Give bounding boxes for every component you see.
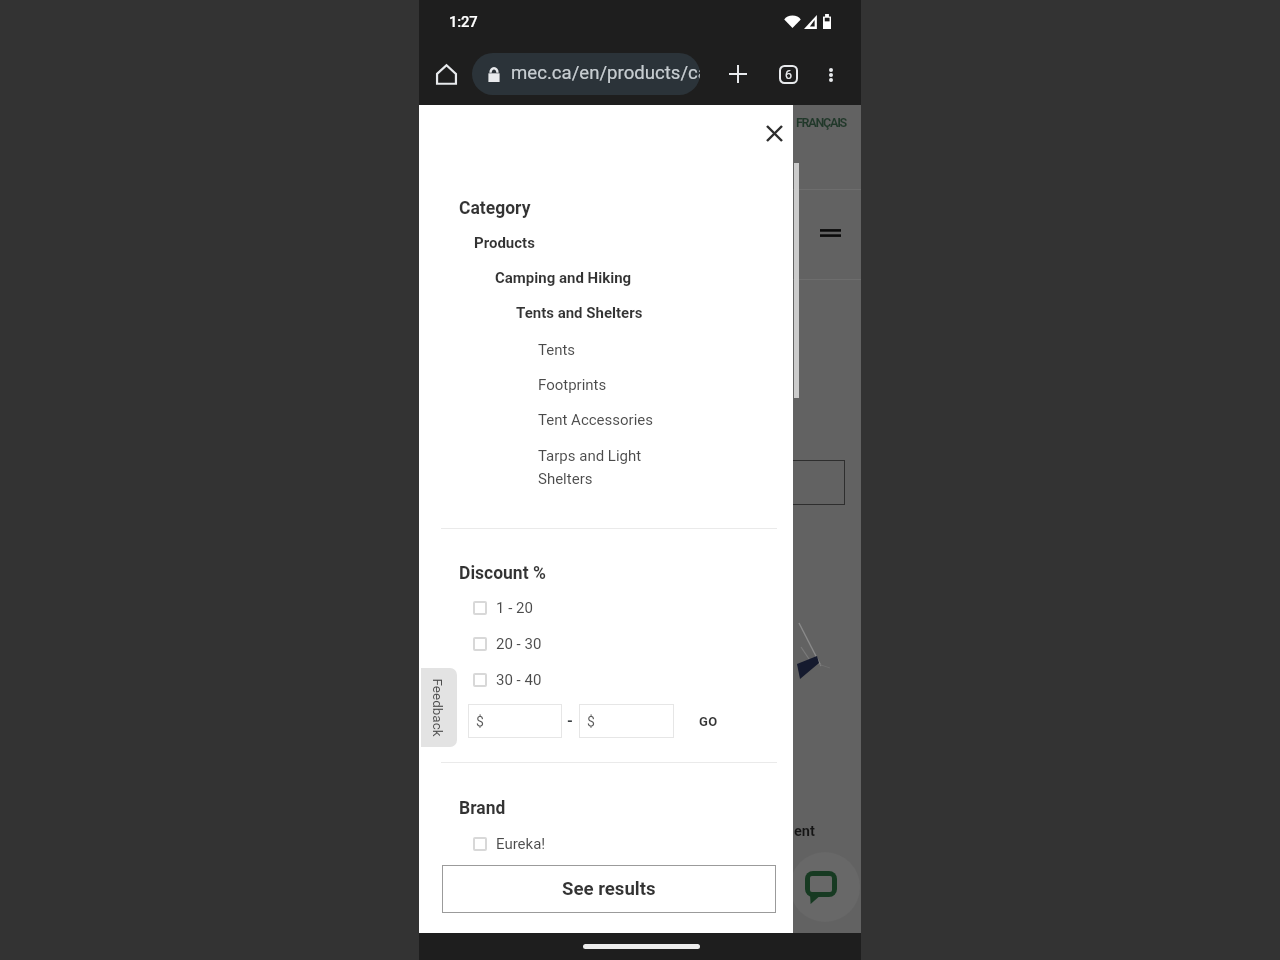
staticText: $ (476, 713, 484, 729)
button[interactable]: New tab (715, 54, 757, 96)
staticText: 1 - 20 (496, 599, 533, 617)
staticText: Tents and Shelters (516, 304, 643, 322)
button[interactable]: Tents (538, 337, 661, 367)
staticText: Category (459, 198, 531, 219)
button[interactable]: 20 - 30 (473, 632, 542, 656)
staticText: mec.ca/en/products/car (511, 62, 700, 84)
staticText: 30 - 40 (496, 671, 542, 689)
button[interactable]: Eureka! (473, 832, 546, 856)
staticText: 1:27 (449, 13, 478, 30)
staticText: 6 (785, 67, 793, 82)
staticText: Camping and Hiking (495, 269, 632, 287)
staticText: Feedback (429, 678, 445, 737)
staticText: Discount % (459, 563, 546, 584)
staticText: Tent Accessories (538, 411, 653, 429)
button[interactable]: 30 - 40 (473, 668, 542, 692)
button[interactable]: mec.ca/en/products/car (472, 53, 700, 95)
button[interactable]: More options (809, 54, 851, 96)
staticText: Brand (459, 798, 506, 819)
button[interactable]: Tents and Shelters (516, 298, 643, 328)
button[interactable]: Tabs (767, 54, 809, 96)
button[interactable]: Products (474, 228, 535, 258)
button[interactable]: Tent Accessories (538, 407, 661, 437)
button[interactable]: Tarps and Light Shelters (538, 443, 661, 535)
staticText: Eureka! (496, 835, 546, 853)
staticText: ent (794, 823, 815, 840)
button[interactable]: GO (691, 704, 737, 738)
button[interactable] (421, 668, 457, 747)
button[interactable]: See results (442, 865, 776, 913)
staticText: - (567, 712, 573, 730)
staticText: See results (562, 878, 656, 900)
button[interactable]: Camping and Hiking (495, 263, 632, 293)
button[interactable]: 1 - 20 (473, 596, 533, 620)
button[interactable]: Home (425, 54, 467, 96)
staticText: Footprints (538, 376, 607, 394)
button[interactable]: Close (754, 113, 794, 153)
staticText: GO (699, 714, 718, 729)
staticText: $ (587, 713, 595, 729)
button[interactable]: Footprints (538, 372, 661, 402)
staticText: Tents (538, 341, 576, 359)
staticText: Tarps and Light Shelters (538, 447, 661, 488)
staticText: 20 - 30 (496, 635, 542, 653)
staticText: Products (474, 234, 535, 252)
staticText: FRANÇAIS (796, 115, 847, 130)
